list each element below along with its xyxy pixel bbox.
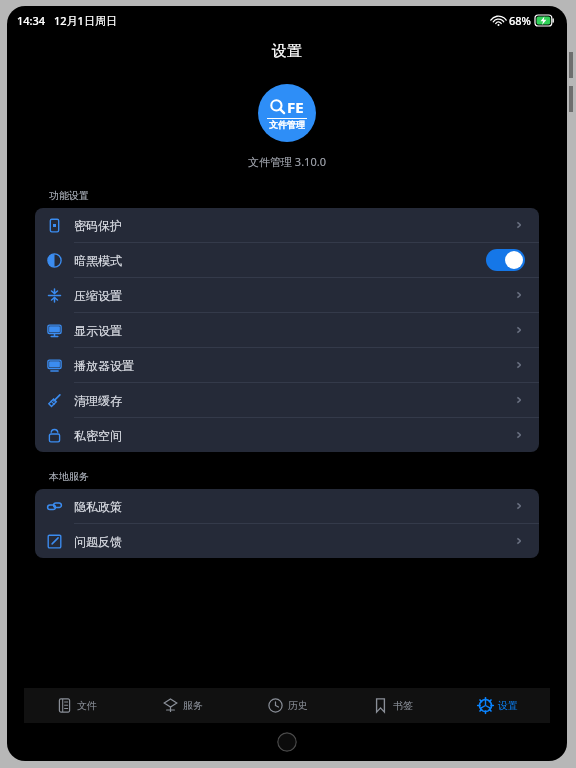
staticText: 暗黑模式 [74,253,122,268]
staticText: 密码保护 [74,218,122,233]
button[interactable]: 隐私政策 [35,489,539,524]
staticText: FE [287,97,304,117]
staticText: 文件 [77,699,97,712]
button[interactable]: 压缩设置 [35,278,539,313]
button[interactable]: 密码保护 [35,208,539,243]
staticText: 压缩设置 [74,288,122,303]
staticText: 68% [509,13,531,28]
staticText: 播放器设置 [74,358,134,373]
button[interactable]: 清理缓存 [35,383,539,418]
staticText: 功能设置 [49,189,89,202]
staticText: 显示设置 [74,323,122,338]
button[interactable]: 显示设置 [35,313,539,348]
button[interactable]: 书签 [340,688,445,723]
staticText: 历史 [288,699,308,712]
staticText: 书签 [393,699,413,712]
staticText: 服务 [183,699,203,712]
staticText: 设置 [498,699,518,712]
staticText: 问题反馈 [74,534,122,549]
staticText: 清理缓存 [74,393,122,408]
button[interactable]: 私密空间 [35,418,539,452]
button[interactable]: 问题反馈 [35,524,539,558]
staticText: 14:34 [17,13,46,28]
staticText: 私密空间 [74,428,122,443]
button[interactable]: 文件 [24,688,130,723]
staticText: 文件管理 3.10.0 [248,154,326,169]
button[interactable]: 播放器设置 [35,348,539,383]
button[interactable]: 服务 [130,688,235,723]
staticText: 文件管理 [269,119,305,130]
staticText: 隐私政策 [74,499,122,514]
button[interactable] [486,249,525,271]
button[interactable]: 设置 [445,688,550,723]
button[interactable]: 历史 [235,688,340,723]
staticText: 12月1日周日 [54,13,117,28]
staticText: 本地服务 [49,470,89,483]
button[interactable]: 暗黑模式 [35,243,539,278]
staticText: 设置 [272,42,302,61]
